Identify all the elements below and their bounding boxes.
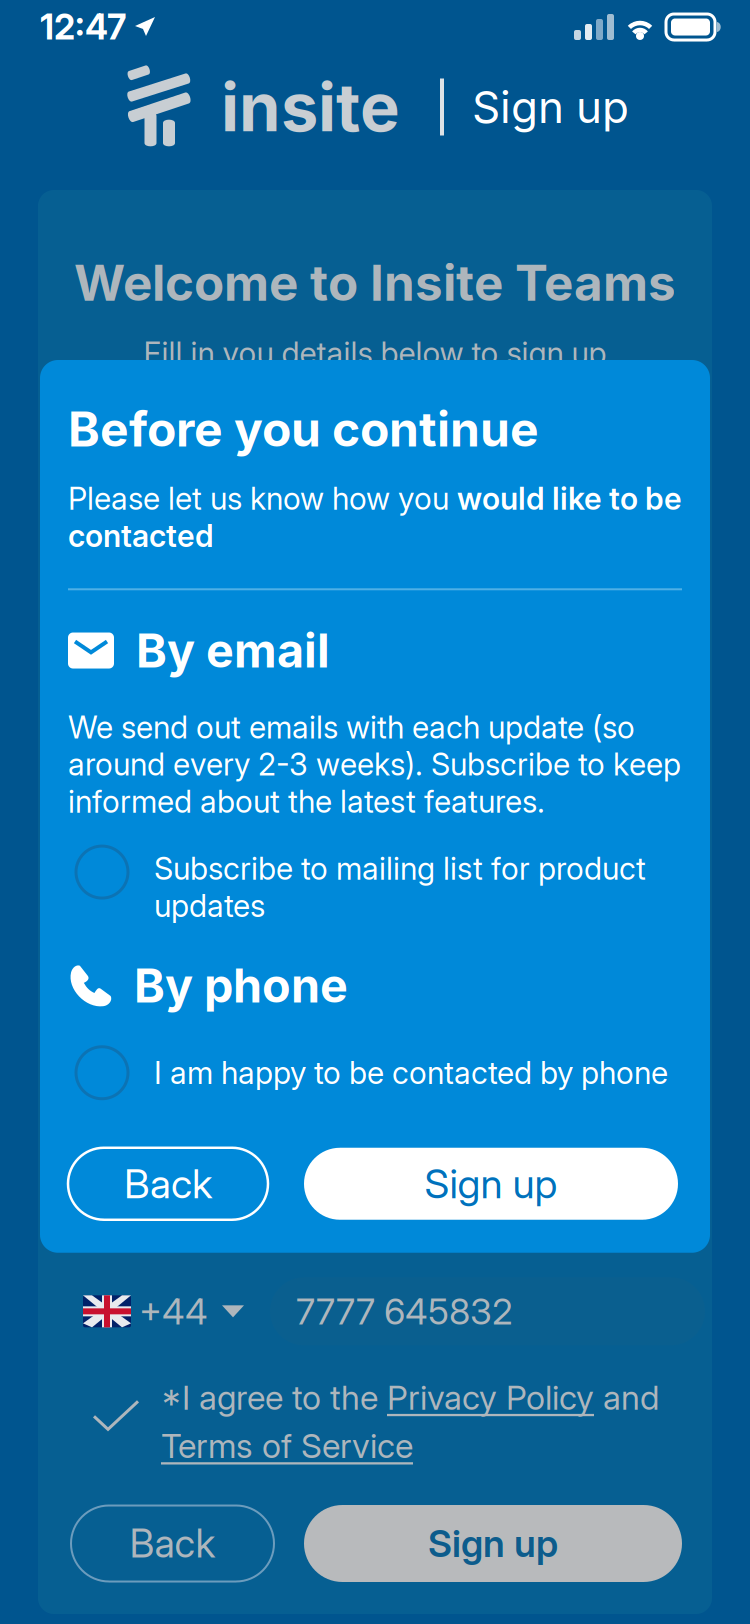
staticText: I am happy to be contacted by phone — [154, 1054, 668, 1091]
staticText: Before you continue — [68, 400, 539, 458]
staticText: 7777 645832 — [296, 1290, 513, 1333]
button[interactable]: Sign up — [304, 1505, 682, 1582]
button[interactable]: 7777 645832 — [244, 1277, 705, 1345]
staticText: insite — [221, 67, 400, 147]
staticText: Subscribe to mailing list for product up… — [154, 850, 646, 924]
staticText: Back — [129, 1520, 215, 1567]
button[interactable]: *I agree to the Privacy Policy and — [38, 1377, 712, 1466]
staticText: By email — [136, 622, 330, 679]
staticText: By phone — [134, 957, 348, 1014]
staticText: +44 — [139, 1290, 208, 1333]
staticText: Please let us know how you would like to… — [68, 480, 682, 554]
staticText: Sign up — [472, 80, 629, 134]
button[interactable]: I am happy to be contacted by phone — [68, 1047, 682, 1099]
staticText: Back — [124, 1160, 212, 1208]
staticText: 12:47 — [40, 6, 126, 48]
staticText: We send out emails with each update (so … — [68, 709, 681, 820]
staticText: Fill in you details below to sign up — [143, 335, 606, 372]
staticText: Welcome to Insite Teams — [74, 253, 676, 313]
staticText: Sign up — [424, 1160, 557, 1208]
staticText: Terms of Service — [161, 1426, 413, 1466]
button[interactable]: +44 — [83, 1290, 244, 1333]
button[interactable]: Sign up — [304, 1148, 678, 1220]
staticText: *I agree to the Privacy Policy and — [161, 1377, 659, 1418]
staticText: Sign up — [428, 1521, 558, 1566]
button[interactable]: Back — [71, 1505, 274, 1581]
button[interactable]: Back — [68, 1148, 268, 1220]
button[interactable]: Sign up — [444, 80, 629, 134]
button[interactable]: Subscribe to mailing list for product up… — [68, 844, 682, 924]
